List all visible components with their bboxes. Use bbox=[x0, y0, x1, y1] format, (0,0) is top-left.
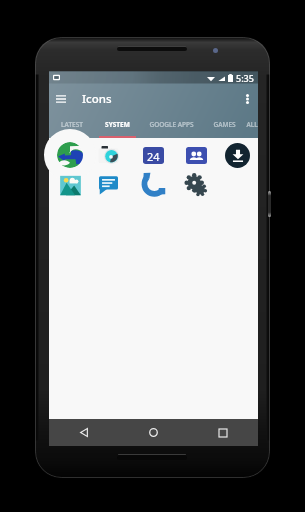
staticText: 24 bbox=[147, 149, 160, 164]
button[interactable]: 24 bbox=[140, 142, 166, 168]
button[interactable]: Download bbox=[225, 143, 250, 168]
button[interactable]: Open navigation drawer bbox=[52, 90, 70, 108]
button[interactable]: Home bbox=[118, 419, 188, 446]
button[interactable]: LATEST bbox=[49, 113, 94, 138]
button[interactable] bbox=[183, 142, 209, 168]
staticText: GAMES bbox=[213, 120, 236, 129]
button[interactable]: GOOGLE APPS bbox=[140, 113, 203, 138]
button[interactable]: ALL bbox=[246, 113, 258, 138]
staticText: LATEST bbox=[61, 120, 83, 129]
button[interactable]: More options bbox=[239, 91, 255, 107]
button[interactable] bbox=[95, 172, 121, 198]
button[interactable] bbox=[95, 142, 121, 168]
button[interactable]: SYSTEM bbox=[94, 113, 140, 138]
button[interactable]: Download bbox=[224, 142, 250, 168]
button[interactable] bbox=[57, 172, 83, 198]
staticText: GOOGLE APPS bbox=[149, 120, 194, 129]
button[interactable] bbox=[140, 172, 166, 198]
button[interactable]: Back bbox=[49, 419, 118, 446]
staticText: 5:35 bbox=[236, 72, 254, 84]
button[interactable]: GAMES bbox=[203, 113, 246, 138]
staticText: Icons bbox=[82, 91, 112, 107]
button[interactable] bbox=[183, 172, 209, 198]
button[interactable]: Recent apps bbox=[188, 419, 258, 446]
button[interactable] bbox=[57, 142, 83, 168]
staticText: SYSTEM bbox=[105, 120, 130, 129]
staticText: ALL bbox=[246, 120, 258, 129]
